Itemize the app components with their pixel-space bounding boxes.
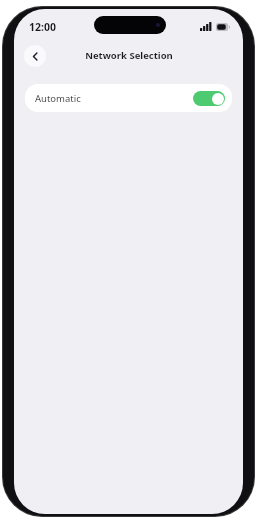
staticText: 12:00 [29, 20, 56, 34]
staticText: Network Selection [85, 49, 173, 62]
staticText: Automatic [35, 92, 81, 105]
button[interactable]: Automatic network selection, on [193, 91, 225, 106]
button[interactable]: Automatic [25, 84, 232, 112]
button[interactable]: Back [24, 45, 46, 67]
